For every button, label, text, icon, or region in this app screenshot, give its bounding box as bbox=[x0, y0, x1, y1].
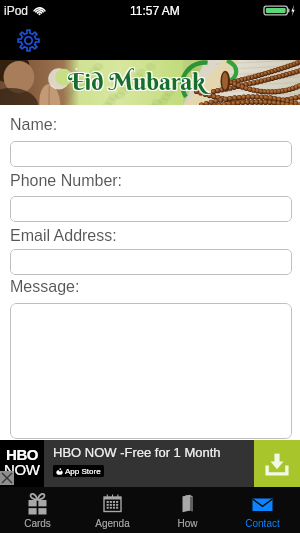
button[interactable]: Close ad bbox=[0, 471, 14, 485]
staticText: Eid Mubarak bbox=[67, 65, 204, 95]
staticText: Eid Mubarak bbox=[69, 65, 206, 95]
button[interactable] bbox=[10, 249, 292, 275]
staticText: Name: bbox=[10, 116, 58, 134]
staticText: NOW bbox=[4, 461, 40, 478]
staticText: Contact bbox=[245, 518, 280, 529]
staticText: Eid Mubarak bbox=[68, 66, 205, 96]
staticText: Eid Mubarak bbox=[69, 67, 206, 97]
staticText: How bbox=[177, 518, 198, 529]
button[interactable]: Download bbox=[254, 440, 300, 487]
button[interactable] bbox=[10, 141, 292, 167]
button[interactable] bbox=[10, 303, 292, 439]
staticText: Eid Mubarak bbox=[67, 67, 204, 97]
button[interactable]: How bbox=[150, 487, 225, 533]
staticText: App Store bbox=[65, 467, 101, 476]
staticText: 11:57 AM bbox=[130, 4, 180, 17]
button[interactable]: HBO bbox=[0, 440, 300, 487]
staticText: HBO NOW -Free for 1 Month bbox=[53, 445, 221, 460]
button[interactable]: Settings bbox=[14, 26, 42, 54]
button[interactable]: Cards bbox=[0, 487, 75, 533]
staticText: Phone Number: bbox=[10, 172, 123, 190]
staticText: Cards bbox=[24, 518, 51, 529]
button[interactable]: Contact bbox=[225, 487, 300, 533]
button[interactable]: Agenda bbox=[75, 487, 150, 533]
staticText: HBO bbox=[6, 446, 39, 463]
staticText: Email Address: bbox=[10, 227, 117, 245]
staticText: Message: bbox=[10, 278, 80, 296]
staticText: iPod bbox=[4, 4, 29, 17]
button[interactable] bbox=[10, 196, 292, 222]
staticText: Agenda bbox=[95, 518, 130, 529]
